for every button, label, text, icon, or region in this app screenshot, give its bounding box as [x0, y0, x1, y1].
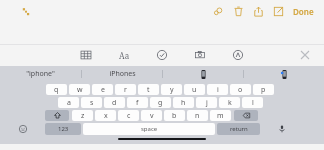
- button[interactable]: l: [242, 97, 263, 108]
- staticText: "iphone": [26, 69, 55, 79]
- button[interactable]: i: [207, 84, 228, 95]
- button[interactable]: Done: [293, 6, 314, 17]
- button[interactable]: s: [81, 97, 102, 108]
- button[interactable]: Delete: [231, 4, 245, 18]
- button[interactable]: "iphone": [0, 66, 81, 82]
- button[interactable]: e: [92, 84, 113, 95]
- staticText: j: [206, 98, 208, 108]
- button[interactable]: Emoji: [17, 123, 29, 135]
- button[interactable]: h: [173, 97, 194, 108]
- staticText: c: [127, 111, 131, 121]
- button[interactable]: Emoji suggestion: [163, 66, 243, 82]
- button[interactable]: j: [196, 97, 217, 108]
- button[interactable]: Dictate: [276, 123, 288, 135]
- button[interactable]: m: [210, 110, 231, 121]
- button[interactable]: t: [138, 84, 159, 95]
- button[interactable]: Markup: [230, 47, 246, 63]
- button[interactable]: Emoji suggestion: [244, 66, 324, 82]
- button[interactable]: Collaborate: [211, 4, 225, 18]
- button[interactable]: New note: [271, 4, 285, 18]
- button[interactable]: n: [187, 110, 208, 121]
- button[interactable]: Table: [78, 47, 94, 63]
- staticText: iPhones: [109, 69, 136, 79]
- staticText: space: [141, 125, 158, 133]
- staticText: r: [124, 85, 127, 95]
- button[interactable]: q: [46, 84, 67, 95]
- button[interactable]: iPhones: [82, 66, 162, 82]
- staticText: z: [81, 111, 85, 121]
- button[interactable]: return: [217, 123, 260, 135]
- button[interactable]: x: [95, 110, 116, 121]
- staticText: 123: [58, 125, 69, 133]
- button[interactable]: Checklist: [154, 47, 170, 63]
- button[interactable]: r: [115, 84, 136, 95]
- button[interactable]: y: [161, 84, 182, 95]
- staticText: p: [261, 85, 266, 95]
- staticText: d: [112, 98, 117, 108]
- staticText: t: [147, 85, 150, 95]
- staticText: s: [90, 98, 94, 108]
- button[interactable]: k: [219, 97, 240, 108]
- button[interactable]: a: [58, 97, 79, 108]
- button[interactable]: z: [72, 110, 93, 121]
- staticText: return: [230, 125, 248, 133]
- staticText: g: [158, 98, 163, 108]
- staticText: b: [172, 111, 177, 121]
- button[interactable]: v: [141, 110, 162, 121]
- button[interactable]: Backspace: [234, 110, 258, 121]
- staticText: v: [150, 111, 154, 121]
- button[interactable]: Camera: [192, 47, 208, 63]
- staticText: Aa: [119, 50, 130, 61]
- button[interactable]: u: [184, 84, 205, 95]
- staticText: Done: [293, 6, 314, 17]
- button[interactable]: p: [253, 84, 274, 95]
- button[interactable]: g: [150, 97, 171, 108]
- staticText: o: [238, 85, 243, 95]
- button[interactable]: f: [127, 97, 148, 108]
- button[interactable]: Aa: [116, 47, 132, 63]
- staticText: x: [104, 111, 108, 121]
- staticText: k: [228, 98, 232, 108]
- button[interactable]: o: [230, 84, 251, 95]
- staticText: f: [136, 98, 139, 108]
- staticText: w: [77, 85, 83, 95]
- staticText: n: [195, 111, 200, 121]
- button[interactable]: 123: [45, 123, 81, 135]
- staticText: h: [181, 98, 186, 108]
- button[interactable]: Close keyboard: [298, 48, 312, 62]
- staticText: a: [67, 98, 71, 108]
- button[interactable]: space: [83, 123, 215, 135]
- button[interactable]: Shift: [45, 110, 69, 121]
- staticText: l: [252, 98, 254, 108]
- staticText: y: [170, 85, 174, 95]
- staticText: u: [192, 85, 197, 95]
- staticText: m: [217, 111, 224, 121]
- button[interactable]: c: [118, 110, 139, 121]
- button[interactable]: d: [104, 97, 125, 108]
- button[interactable]: Marker: [18, 4, 34, 20]
- button[interactable]: w: [69, 84, 90, 95]
- button[interactable]: Share: [251, 4, 265, 18]
- staticText: e: [101, 85, 105, 95]
- staticText: i: [217, 85, 219, 95]
- button[interactable]: b: [164, 110, 185, 121]
- staticText: q: [54, 85, 59, 95]
